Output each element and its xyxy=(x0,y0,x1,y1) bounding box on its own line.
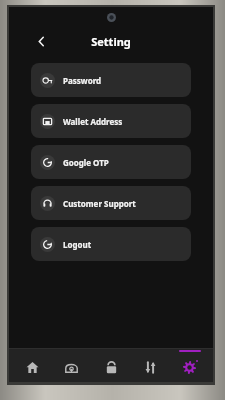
button[interactable]: Customer Support xyxy=(31,186,191,220)
button[interactable]: Settings xyxy=(174,349,205,382)
staticText: Customer Support xyxy=(63,198,136,209)
staticText: Wallet Address xyxy=(63,116,123,127)
staticText: Google OTP xyxy=(63,157,109,168)
staticText: Logout xyxy=(63,239,92,250)
button[interactable]: Security xyxy=(96,349,127,382)
button[interactable]: Logout xyxy=(31,227,191,261)
staticText: Setting xyxy=(91,34,131,49)
button[interactable]: Transfer xyxy=(135,349,166,382)
button[interactable]: Google OTP xyxy=(31,145,191,179)
button[interactable]: Wallet Address xyxy=(31,104,191,138)
button[interactable]: Back xyxy=(31,31,51,51)
staticText: Password xyxy=(63,75,102,86)
button[interactable]: Password xyxy=(31,63,191,97)
button[interactable]: Wallet xyxy=(56,349,87,382)
button[interactable]: Home xyxy=(17,349,48,382)
